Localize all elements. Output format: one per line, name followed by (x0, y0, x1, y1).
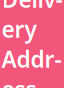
staticText: Delivery Address (1, 0, 62, 88)
